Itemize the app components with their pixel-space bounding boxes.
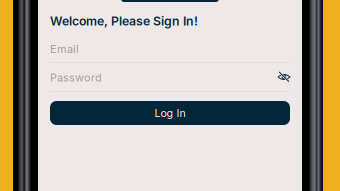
button[interactable]: Log In bbox=[50, 101, 290, 125]
staticText: Email bbox=[50, 42, 79, 56]
staticText: Log In bbox=[154, 106, 185, 119]
staticText: Welcome, Please Sign In! bbox=[50, 14, 198, 28]
button[interactable]: Show password bbox=[272, 65, 296, 89]
staticText: Password bbox=[50, 71, 102, 84]
